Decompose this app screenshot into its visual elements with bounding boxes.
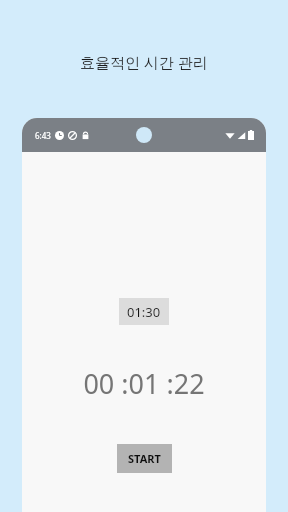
button[interactable]: START bbox=[117, 444, 172, 473]
staticText: START bbox=[128, 451, 161, 466]
button[interactable]: 01:30 bbox=[119, 298, 169, 325]
staticText: 6:43 bbox=[35, 130, 51, 141]
staticText: 효율적인 시간 관리 bbox=[80, 52, 208, 72]
staticText: 00 :01 :22 bbox=[83, 365, 205, 402]
staticText: 01:30 bbox=[127, 303, 161, 321]
